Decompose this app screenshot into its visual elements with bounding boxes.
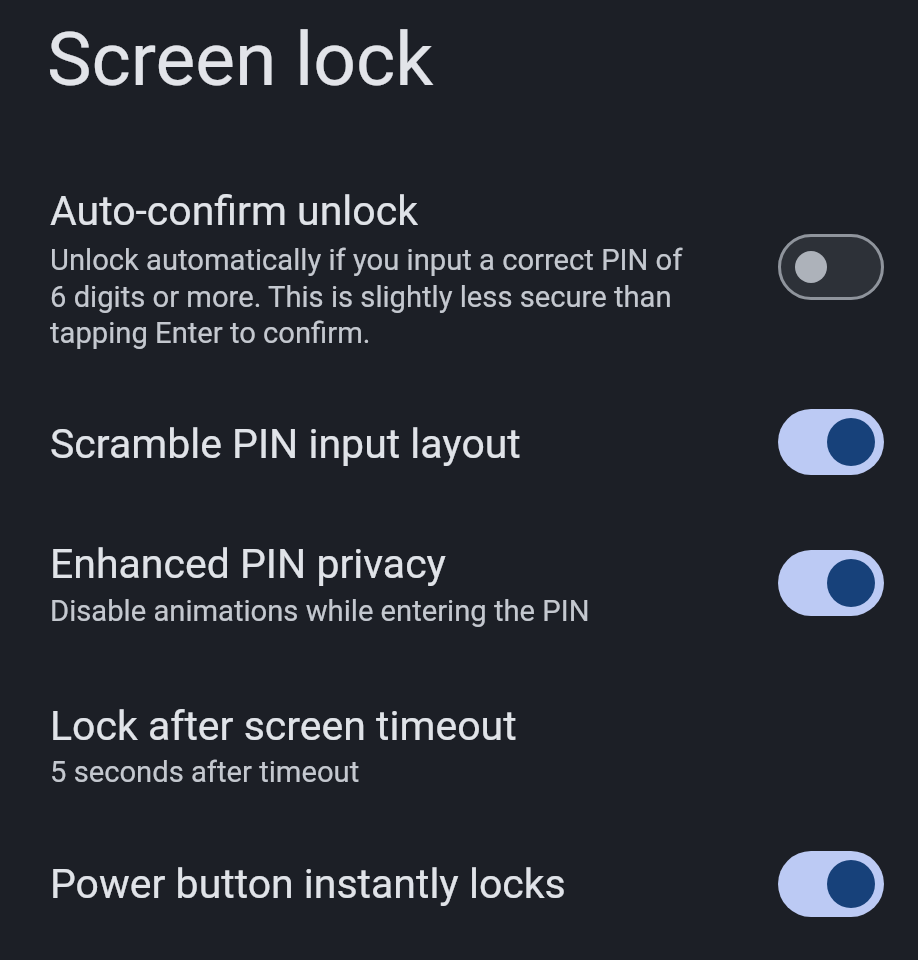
staticText: Auto-confirm unlock bbox=[50, 187, 418, 235]
button[interactable]: Scramble PIN input layout bbox=[0, 399, 918, 486]
button[interactable]: Auto-confirm unlock bbox=[0, 166, 918, 376]
staticText: Power button instantly locks bbox=[50, 860, 566, 908]
button[interactable]: Lock after screen timeout bbox=[0, 676, 918, 810]
staticText: Scramble PIN input layout bbox=[50, 420, 521, 468]
button[interactable]: Power button instantly locks bbox=[0, 826, 918, 942]
staticText: 5 seconds after timeout bbox=[50, 755, 360, 789]
staticText: Screen lock bbox=[47, 15, 434, 103]
staticText: Lock after screen timeout bbox=[50, 702, 517, 750]
button[interactable]: Enhanced PIN privacy bbox=[0, 516, 918, 650]
staticText: Enhanced PIN privacy bbox=[50, 540, 447, 588]
staticText: Unlock automatically if you input a corr… bbox=[50, 243, 683, 350]
staticText: Disable animations while entering the PI… bbox=[50, 594, 590, 628]
